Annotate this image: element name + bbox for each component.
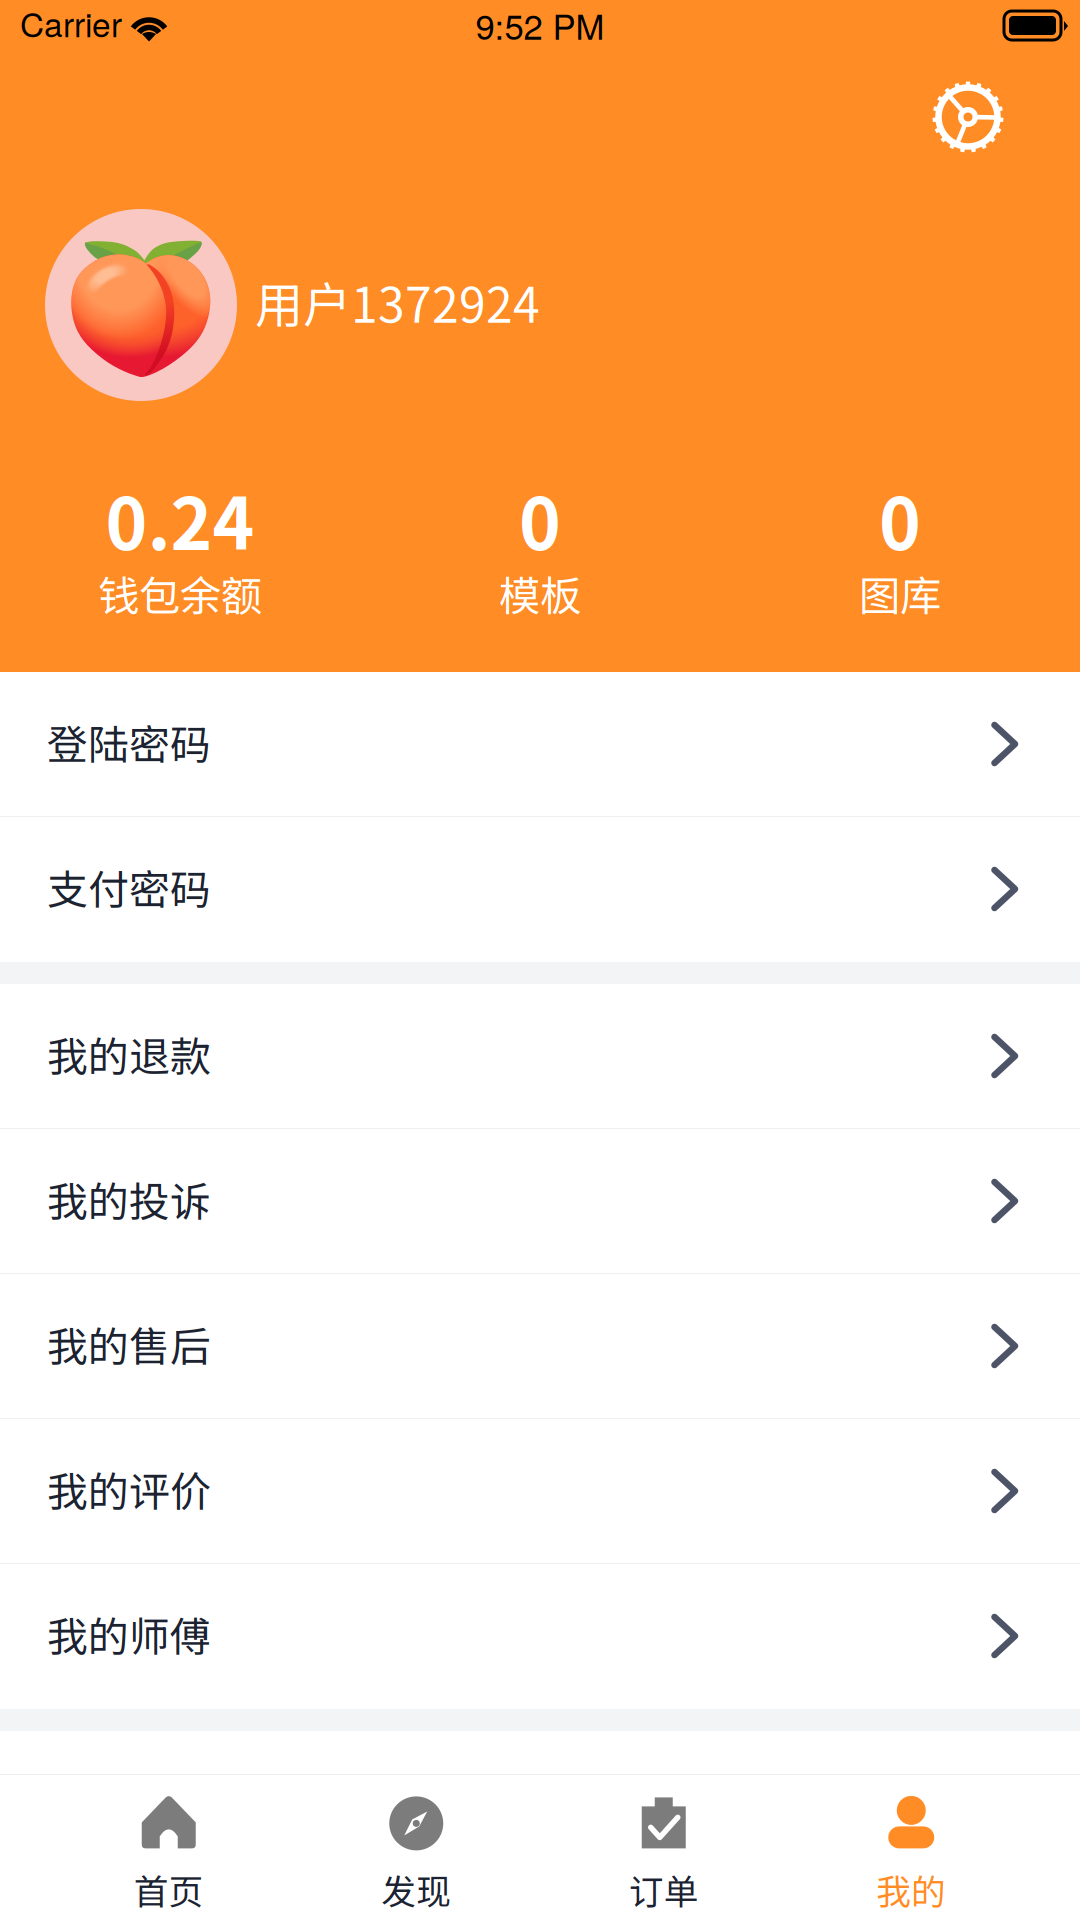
button[interactable]: 订单: [540, 1775, 787, 1920]
staticText: 模板: [499, 563, 581, 623]
button[interactable]: 我的售后: [0, 1274, 1080, 1419]
staticText: 图库: [859, 563, 941, 623]
staticText: 钱包余额: [98, 563, 262, 623]
button[interactable]: 我的评价: [0, 1419, 1080, 1564]
button[interactable]: Settings: [932, 81, 1004, 153]
staticText: 9:52 PM: [475, 0, 604, 50]
button[interactable]: 我的师傅: [0, 1564, 1080, 1709]
staticText: 发现: [381, 1864, 451, 1915]
staticText: 0: [879, 468, 921, 570]
staticText: 0: [519, 468, 561, 570]
staticText: 我的投诉: [47, 1169, 211, 1229]
staticText: 用户1372924: [255, 267, 540, 336]
staticText: Carrier: [20, 0, 122, 47]
staticText: 我的退款: [47, 1024, 211, 1084]
staticText: 我的: [876, 1864, 946, 1915]
staticText: 支付密码: [47, 857, 211, 917]
button[interactable]: 发现: [292, 1775, 540, 1920]
staticText: 我的师傅: [47, 1604, 211, 1664]
staticText: 订单: [629, 1864, 699, 1915]
staticText: 我的售后: [47, 1314, 211, 1374]
button[interactable]: 我的退款: [0, 984, 1080, 1129]
staticText: 🍑: [62, 237, 220, 381]
staticText: 首页: [134, 1864, 204, 1915]
button[interactable]: 首页: [45, 1775, 292, 1920]
button[interactable]: 我的: [787, 1775, 1035, 1920]
button[interactable]: 我的投诉: [0, 1129, 1080, 1274]
button[interactable]: 支付密码: [0, 817, 1080, 962]
staticText: 登陆密码: [47, 712, 211, 772]
staticText: 0.24: [105, 468, 254, 570]
staticText: 我的评价: [47, 1459, 211, 1519]
button[interactable]: 登陆密码: [0, 672, 1080, 817]
